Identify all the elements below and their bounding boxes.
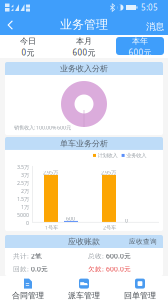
staticText: 600元 [72, 47, 95, 58]
staticText: 2万 [21, 187, 29, 194]
staticText: 3万 [21, 171, 29, 178]
button[interactable]: 回单管理 [112, 276, 168, 300]
staticText: 业务收入 [126, 152, 146, 159]
button[interactable]: 返回 [5, 18, 18, 32]
staticText: 本月 [76, 36, 92, 46]
staticText: 业务收入分析 [60, 64, 108, 73]
staticText: 回款: [13, 265, 29, 273]
staticText: 2号车 [103, 224, 116, 231]
staticText: 本年 [132, 36, 148, 46]
staticText: 派车管理 [68, 291, 100, 300]
staticText: 欠款: [88, 265, 104, 273]
staticText: 合同管理 [12, 291, 44, 300]
staticText: 0元 [21, 47, 34, 58]
staticText: 回单管理 [124, 291, 156, 300]
button[interactable]: 合同管理 [0, 276, 56, 300]
staticText: 共计: [13, 252, 29, 260]
button[interactable]: 本年 [116, 37, 164, 55]
staticText: 1号车 [45, 224, 58, 231]
button[interactable]: 派车管理 [56, 276, 112, 300]
staticText: 5:05 [141, 2, 158, 13]
staticText: 0 [125, 217, 128, 224]
staticText: 应收查询 [129, 237, 157, 246]
staticText: 600 [66, 215, 75, 222]
staticText: 600.0元 [106, 265, 131, 273]
staticText: 应收账款 [68, 237, 100, 246]
staticText: 2.95万 [43, 169, 58, 176]
staticText: 0 [26, 219, 29, 226]
button[interactable]: 今日 [4, 37, 52, 55]
staticText: 业务管理 [60, 17, 108, 32]
staticText: 2.5万 [17, 179, 29, 186]
staticText: 600元 [128, 47, 151, 58]
staticText: 1万 [21, 203, 29, 210]
staticText: 今日 [20, 36, 36, 46]
staticText: 消息 [146, 21, 164, 32]
staticText: 600.0元 [106, 252, 131, 260]
staticText: 计划收入 [98, 152, 118, 159]
staticText: 0.0元 [31, 265, 48, 273]
button[interactable]: 本月 [60, 37, 108, 55]
staticText: 单车业务分析 [60, 139, 108, 148]
staticText: 销售收入: 100.00% 600元 [14, 124, 71, 131]
button[interactable]: 应收查询 [123, 235, 163, 248]
staticText: 2.95万 [101, 169, 116, 176]
staticText: 总收: [88, 252, 104, 260]
staticText: 2笔 [31, 252, 42, 260]
staticText: 5000 [17, 211, 29, 218]
staticText: 3.5万 [17, 163, 29, 170]
button[interactable]: 消息 [143, 19, 167, 34]
staticText: 1.5万 [17, 195, 29, 202]
